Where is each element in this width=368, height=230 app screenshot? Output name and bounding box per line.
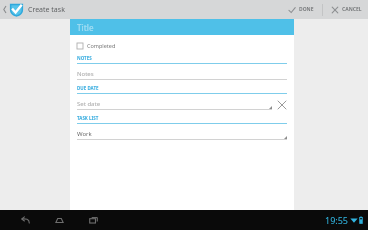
button[interactable]: Up (1, 0, 8, 19)
button[interactable]: Recent apps (82, 210, 104, 230)
staticText: DUE DATE (77, 85, 99, 91)
staticText: 19:55 (324, 214, 348, 226)
staticText: Title (77, 22, 94, 33)
staticText: TASK LIST (77, 115, 99, 121)
button[interactable]: Home (48, 210, 70, 230)
button[interactable]: Back (14, 210, 36, 230)
button[interactable]: Completed (77, 40, 287, 51)
button[interactable]: Clear date (276, 99, 287, 110)
staticText: NOTES (77, 55, 92, 61)
staticText: Set date (77, 100, 101, 108)
button[interactable]: Notes (77, 68, 287, 80)
button[interactable]: Work (77, 128, 287, 140)
staticText: Work (77, 130, 92, 138)
staticText: CANCEL (342, 6, 362, 13)
staticText: Create task (28, 5, 65, 15)
staticText: DONE (299, 6, 314, 13)
staticText: Completed (87, 42, 116, 49)
button[interactable]: CANCEL (329, 0, 364, 19)
button[interactable]: DONE (286, 0, 316, 19)
button[interactable]: Set date (77, 98, 272, 110)
staticText: Notes (77, 70, 94, 78)
button[interactable]: Title (70, 19, 294, 35)
